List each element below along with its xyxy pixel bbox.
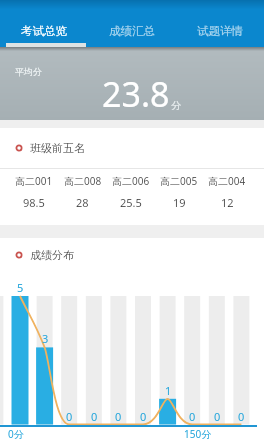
staticText: 高二004 bbox=[208, 174, 246, 188]
button[interactable]: 考试总览 bbox=[0, 0, 88, 47]
staticText: 考试总览 bbox=[21, 24, 67, 38]
staticText: 19 bbox=[173, 195, 186, 210]
staticText: 28 bbox=[76, 195, 89, 210]
staticText: 0 bbox=[214, 409, 221, 424]
staticText: 成绩分布 bbox=[30, 248, 74, 262]
staticText: 分 bbox=[171, 99, 181, 112]
staticText: 12 bbox=[221, 195, 234, 210]
staticText: 0 bbox=[66, 409, 73, 424]
staticText: 98.5 bbox=[23, 195, 45, 210]
staticText: 0分 bbox=[8, 427, 24, 440]
staticText: 23.8 bbox=[102, 71, 170, 117]
staticText: 1 bbox=[165, 383, 172, 398]
staticText: 高二001 bbox=[15, 174, 53, 188]
staticText: 平均分 bbox=[15, 66, 42, 77]
staticText: 高二008 bbox=[64, 174, 102, 188]
staticText: 0 bbox=[140, 409, 147, 424]
staticText: 5 bbox=[17, 280, 24, 295]
staticText: 0 bbox=[91, 409, 98, 424]
staticText: 0 bbox=[238, 409, 245, 424]
staticText: 0 bbox=[115, 409, 122, 424]
button[interactable]: 试题详情 bbox=[176, 0, 264, 47]
staticText: 0 bbox=[189, 409, 196, 424]
staticText: 3 bbox=[42, 331, 49, 346]
staticText: 高二005 bbox=[160, 174, 198, 188]
staticText: 高二006 bbox=[112, 174, 150, 188]
staticText: 试题详情 bbox=[197, 24, 243, 38]
staticText: 25.5 bbox=[120, 195, 142, 210]
button[interactable]: 成绩汇总 bbox=[88, 0, 176, 47]
staticText: 班级前五名 bbox=[30, 141, 85, 155]
staticText: 成绩汇总 bbox=[109, 24, 155, 38]
staticText: 150分 bbox=[184, 427, 212, 440]
